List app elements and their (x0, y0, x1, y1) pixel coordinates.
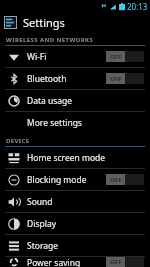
button[interactable]: Storage (0, 235, 150, 256)
button[interactable]: Toggle off (106, 73, 144, 84)
staticText: Display (27, 218, 56, 230)
staticText: WIRELESS AND NETWORKS (6, 36, 94, 44)
button[interactable]: Blocking mode (0, 169, 150, 190)
button[interactable]: Toggle off (106, 51, 144, 62)
staticText: Settings (23, 15, 65, 30)
button[interactable]: Data usage (0, 90, 150, 111)
staticText: Data usage (27, 95, 73, 107)
staticText: Power saving (27, 257, 81, 267)
staticText: Wi-Fi (27, 51, 47, 63)
staticText: OFF (110, 176, 122, 184)
staticText: Storage (27, 240, 59, 252)
button[interactable]: Sound (0, 191, 150, 212)
staticText: Home screen mode (27, 152, 106, 164)
staticText: Sound (27, 196, 53, 208)
button[interactable]: Toggle off (106, 174, 144, 185)
staticText: Blocking mode (27, 174, 87, 186)
button[interactable]: Home screen mode (0, 147, 150, 168)
staticText: Bluetooth (27, 73, 67, 85)
button[interactable]: More settings (0, 112, 150, 133)
staticText: 20:13 (127, 1, 148, 12)
button[interactable]: Toggle off (106, 257, 144, 267)
button[interactable]: Bluetooth (0, 68, 150, 89)
staticText: OFF (110, 53, 122, 61)
button[interactable]: Power saving (0, 257, 150, 267)
staticText: OFF (110, 258, 122, 266)
button[interactable]: Display (0, 213, 150, 234)
staticText: OFF (110, 75, 122, 83)
button[interactable]: Settings (0, 12, 150, 32)
staticText: DEVICE (6, 137, 30, 145)
button[interactable]: Wi-Fi (0, 46, 150, 67)
staticText: More settings (27, 117, 82, 129)
